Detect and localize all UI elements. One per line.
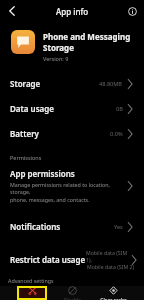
staticText: Version: 9 bbox=[43, 55, 69, 62]
button[interactable]: Back bbox=[4, 3, 20, 19]
button[interactable]: Restrict data usage bbox=[0, 242, 144, 277]
staticText: Data usage bbox=[10, 103, 54, 114]
staticText: 0B bbox=[116, 105, 123, 113]
staticText: Advanced settings bbox=[8, 277, 54, 284]
staticText: App permissions bbox=[10, 168, 75, 179]
staticText: 48.80MB bbox=[99, 80, 123, 88]
staticText: App info bbox=[56, 6, 89, 17]
staticText: Permissions bbox=[10, 154, 42, 161]
staticText: Force stop bbox=[20, 297, 44, 300]
button[interactable]: Disable bbox=[57, 286, 87, 300]
staticText: Storage bbox=[10, 78, 41, 89]
staticText: Mobile data (SIM 2) bbox=[87, 263, 134, 270]
staticText: Battery bbox=[10, 128, 39, 139]
button[interactable]: Clear cache bbox=[98, 286, 128, 300]
staticText: Clear cache bbox=[100, 297, 127, 300]
button[interactable]: Battery bbox=[0, 121, 144, 146]
staticText: Manage permissions related to location, … bbox=[10, 181, 122, 203]
staticText: Mobile data (SIM 1), bbox=[86, 249, 134, 263]
staticText: Restrict data usage bbox=[10, 254, 86, 265]
staticText: Disable bbox=[64, 297, 81, 300]
button[interactable]: Notifications bbox=[0, 214, 144, 239]
staticText: Storage bbox=[43, 42, 74, 53]
button[interactable]: Data usage bbox=[0, 96, 144, 121]
staticText: Notifications bbox=[10, 221, 61, 232]
button[interactable]: Help bbox=[125, 4, 139, 18]
button[interactable]: Storage bbox=[0, 71, 144, 96]
staticText: Phone and Messaging bbox=[43, 31, 131, 42]
staticText: Yes bbox=[114, 223, 123, 231]
button[interactable]: Force stop bbox=[17, 286, 47, 300]
button[interactable]: App permissions bbox=[0, 166, 144, 205]
staticText: 0.0% bbox=[110, 130, 123, 138]
